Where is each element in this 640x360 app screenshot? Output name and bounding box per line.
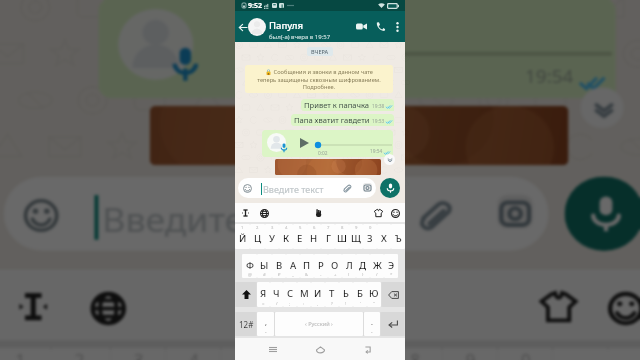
button[interactable]: # <box>257 254 272 278</box>
button[interactable]: ) <box>356 254 370 278</box>
button[interactable]: ; <box>283 282 297 307</box>
staticText: ) <box>362 272 364 278</box>
staticText: & <box>305 272 309 278</box>
button[interactable]: Привет к папачка <box>301 99 394 111</box>
button[interactable]: Emoji <box>600 284 640 329</box>
button[interactable]: Photo <box>150 106 568 165</box>
button[interactable]: 8 <box>387 348 442 360</box>
button[interactable]: 0 <box>363 224 377 249</box>
staticText: 3 <box>134 351 146 360</box>
button[interactable]: 6 <box>276 348 331 360</box>
button[interactable]: @ <box>242 254 257 278</box>
button[interactable]: Папа хватит гавдети <box>291 114 394 126</box>
button[interactable]: Back <box>358 340 376 358</box>
button[interactable]: Scroll to bottom <box>580 87 624 128</box>
button[interactable]: 5 <box>221 348 276 360</box>
button[interactable]: 12# <box>236 312 256 336</box>
button[interactable]: Emoji <box>243 184 252 193</box>
button[interactable]: Camera <box>497 195 533 229</box>
button[interactable]: Handwriting <box>296 284 343 329</box>
button[interactable]: Stickers <box>372 207 384 219</box>
button[interactable]: 8 <box>335 224 349 249</box>
button[interactable]: * <box>384 254 398 278</box>
button[interactable]: : <box>297 282 311 307</box>
staticText: + <box>334 272 337 278</box>
button[interactable]: Voice message <box>98 0 616 98</box>
button[interactable]: Attach <box>410 191 458 236</box>
button[interactable]: 3 <box>265 224 279 249</box>
button[interactable]: 7 <box>321 224 335 249</box>
button[interactable]: Ъ <box>391 224 405 249</box>
staticText: 0 <box>521 351 533 360</box>
button[interactable]: Attach <box>341 182 353 194</box>
button[interactable]: = <box>257 282 270 307</box>
button[interactable]: Camera <box>363 183 372 192</box>
button[interactable]: Video call <box>352 17 371 36</box>
button[interactable]: Text editing <box>8 284 55 329</box>
button[interactable]: Backspace <box>382 282 404 307</box>
button[interactable]: 5 <box>293 224 307 249</box>
staticText: 6 <box>313 225 316 231</box>
button[interactable]: Handwriting <box>312 207 324 219</box>
button[interactable]: • <box>257 312 274 336</box>
button[interactable]: 🔒 Сообщения и звонки в данном чате тепер… <box>245 65 393 93</box>
button[interactable]: 4 <box>279 224 293 249</box>
button[interactable]: & <box>300 254 314 278</box>
button[interactable]: + <box>328 254 342 278</box>
button[interactable]: ( <box>342 254 356 278</box>
button[interactable]: Emoji <box>238 178 376 198</box>
button[interactable]: - <box>314 254 328 278</box>
staticText: . <box>371 318 373 328</box>
button[interactable]: ' <box>353 282 367 307</box>
button[interactable]: ₽ <box>272 254 286 278</box>
button[interactable]: Text editing <box>239 207 251 219</box>
button[interactable]: Space <box>275 312 363 336</box>
button[interactable]: Photo <box>275 159 381 175</box>
button[interactable]: 1 <box>235 224 250 249</box>
button[interactable]: 2 <box>250 224 265 249</box>
button[interactable]: Emoji <box>4 176 549 251</box>
button[interactable]: 7 <box>331 348 387 360</box>
button[interactable]: Enter <box>381 312 404 336</box>
button[interactable]: 9 <box>349 224 363 249</box>
button[interactable]: Stickers <box>533 284 580 329</box>
button[interactable]: 6 <box>307 224 321 249</box>
button[interactable]: More options <box>390 20 404 34</box>
button[interactable]: ? <box>325 282 339 307</box>
staticText: ? <box>331 301 333 307</box>
button[interactable]: Change language <box>258 207 270 219</box>
button[interactable]: ВЧЕРА <box>307 47 333 56</box>
button[interactable]: Voice call <box>371 17 390 36</box>
staticText: 7 <box>355 351 367 360</box>
button[interactable]: _ <box>286 254 300 278</box>
button[interactable]: / <box>370 254 384 278</box>
button[interactable]: Record voice message <box>564 176 640 251</box>
button[interactable]: Emoji <box>23 199 59 232</box>
button[interactable]: " <box>367 282 381 307</box>
button[interactable]: Recent apps <box>264 340 282 358</box>
button[interactable]: ! <box>339 282 353 307</box>
button[interactable]: Emoji <box>389 207 401 219</box>
button[interactable]: Х <box>377 224 391 249</box>
button[interactable]: Contact photo <box>248 18 266 36</box>
button[interactable]: Change language <box>83 284 130 329</box>
staticText: ! <box>345 301 347 307</box>
button[interactable]: / <box>270 282 283 307</box>
button[interactable]: Shift <box>236 282 256 307</box>
staticText: Р <box>318 259 324 272</box>
button[interactable]: Scroll to bottom <box>384 154 395 165</box>
button[interactable]: Back <box>236 20 250 34</box>
button[interactable]: • <box>364 312 380 336</box>
button[interactable]: Record voice message <box>380 178 400 198</box>
button[interactable]: Home <box>311 340 329 358</box>
button[interactable]: Voice message <box>262 130 393 157</box>
button[interactable]: , <box>311 282 325 307</box>
